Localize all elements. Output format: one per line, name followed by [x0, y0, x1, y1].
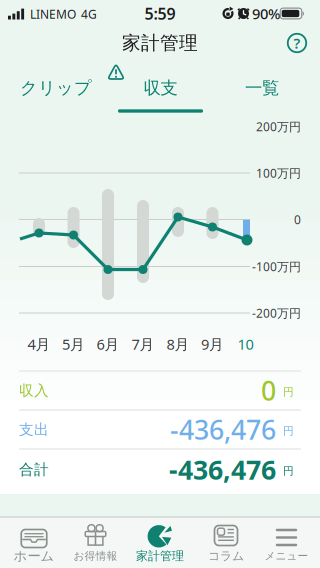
staticText: コラム [208, 549, 244, 563]
staticText: 円 [283, 424, 294, 437]
button[interactable]: 一覧 [217, 73, 307, 103]
staticText: -436,476 [169, 452, 276, 487]
button[interactable]: メニュー [255, 517, 317, 568]
staticText: 8月 [166, 334, 189, 354]
staticText: クリップ [20, 77, 92, 99]
staticText: 収入 [19, 381, 49, 399]
staticText: 収支 [143, 77, 177, 99]
staticText: 家計管理 [122, 31, 198, 54]
staticText: 円 [283, 385, 294, 398]
staticText: 90% [252, 4, 280, 23]
staticText: ホーム [13, 548, 54, 564]
button[interactable]: クリップ [11, 73, 101, 103]
staticText: 4月 [27, 334, 50, 354]
staticText: 5月 [62, 334, 85, 354]
staticText: 合計 [19, 460, 49, 478]
button[interactable]: お得情報 [64, 517, 126, 568]
staticText: 100万円 [256, 165, 301, 181]
staticText: メニュー [264, 549, 308, 562]
staticText: 4G [81, 6, 97, 22]
staticText: ? [293, 33, 300, 53]
staticText: 200万円 [256, 118, 301, 134]
staticText: 10 [237, 334, 253, 354]
button[interactable]: ホーム [3, 517, 65, 568]
staticText: お得情報 [73, 549, 117, 562]
staticText: 5:59 [144, 3, 175, 24]
staticText: -200万円 [252, 305, 301, 321]
staticText: -100万円 [252, 258, 301, 274]
staticText: 7月 [131, 334, 154, 354]
staticText: 円 [283, 464, 294, 477]
staticText: 家計管理 [136, 549, 184, 563]
staticText: 一覧 [245, 77, 279, 99]
button[interactable]: 収支 [115, 73, 205, 103]
button[interactable]: 家計管理 [129, 517, 191, 568]
staticText: 0 [261, 373, 276, 408]
staticText: 6月 [96, 334, 119, 354]
staticText: 支出 [19, 420, 49, 438]
staticText: LINEMO [30, 6, 76, 22]
staticText: 0 [294, 211, 301, 227]
button[interactable]: ヘルプ [284, 30, 310, 56]
staticText: 9月 [201, 334, 224, 354]
button[interactable]: コラム [195, 517, 257, 568]
staticText: -436,476 [170, 412, 276, 447]
